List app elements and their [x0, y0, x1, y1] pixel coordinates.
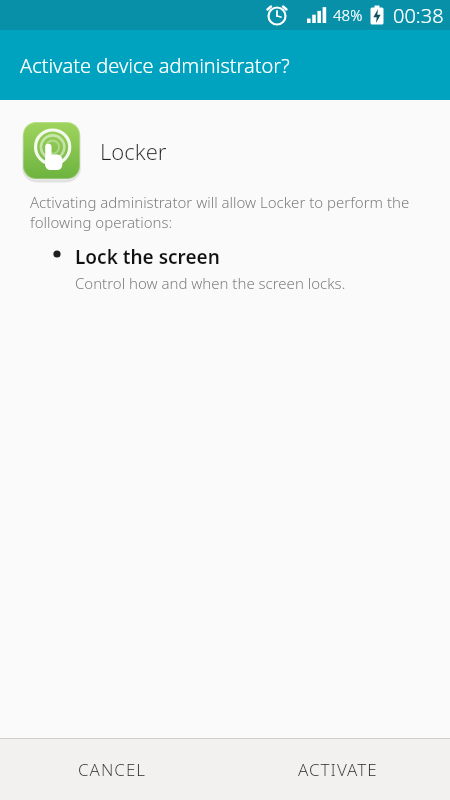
- staticText: Activate device administrator?: [20, 52, 290, 79]
- staticText: Lock the screen: [75, 244, 220, 270]
- button[interactable]: CANCEL: [0, 739, 225, 800]
- staticText: ACTIVATE: [298, 758, 378, 781]
- staticText: CANCEL: [78, 758, 147, 781]
- staticText: 48%: [333, 5, 363, 25]
- staticText: Activating administrator will allow Lock…: [30, 192, 410, 232]
- staticText: 00:38: [393, 2, 444, 29]
- staticText: Control how and when the screen locks.: [75, 273, 346, 293]
- button[interactable]: ACTIVATE: [225, 739, 450, 800]
- staticText: Locker: [100, 136, 167, 166]
